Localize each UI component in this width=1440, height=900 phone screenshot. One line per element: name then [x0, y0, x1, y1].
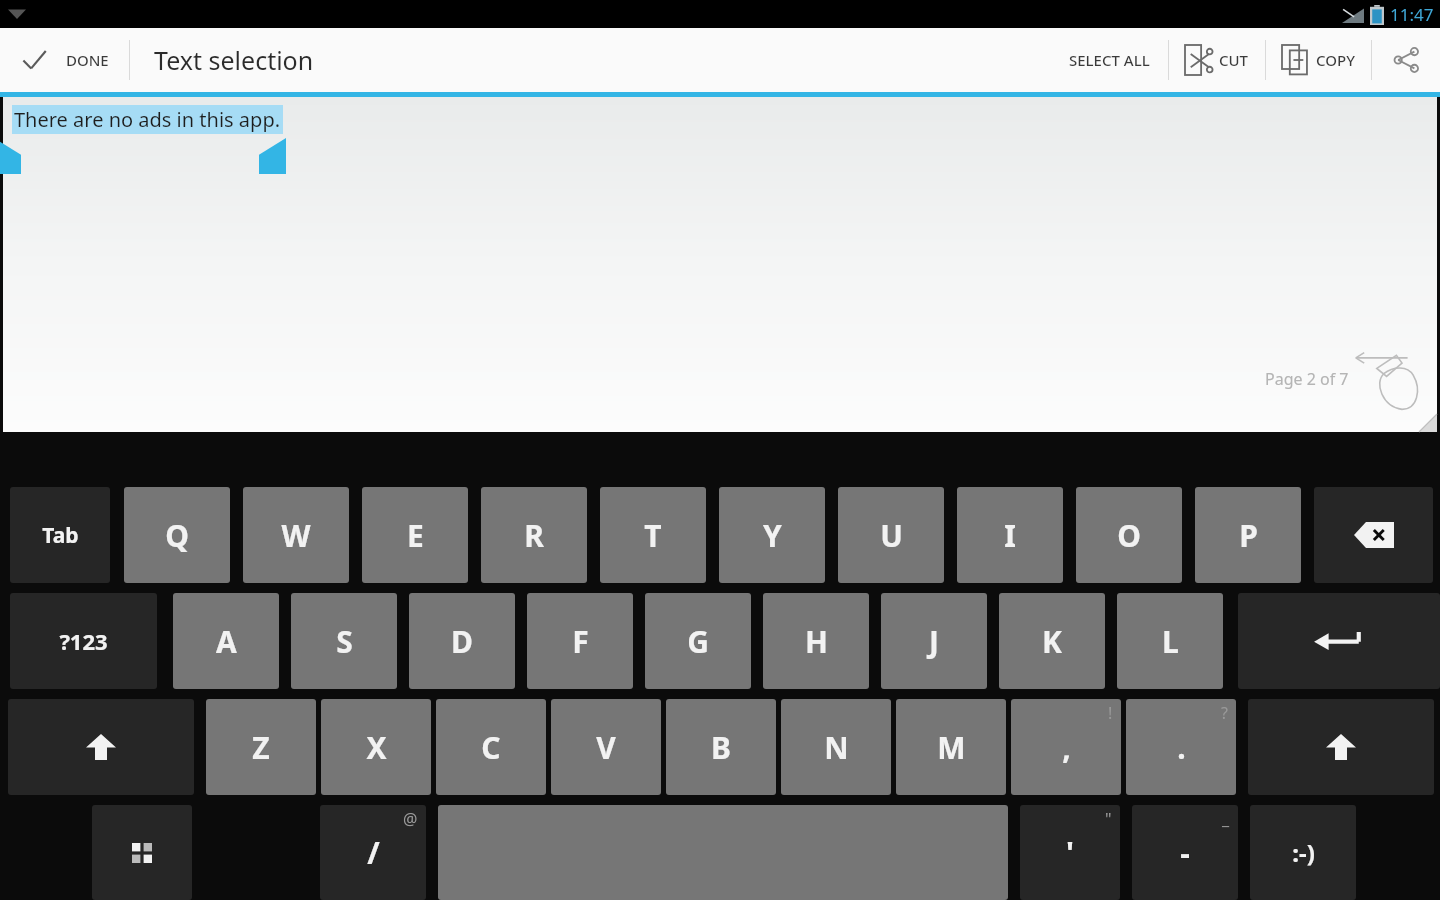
button[interactable]: X	[321, 699, 431, 795]
button[interactable]: O	[1076, 487, 1182, 583]
button[interactable]: Selection end handle	[259, 138, 286, 174]
staticText: N	[824, 727, 849, 768]
button[interactable]: H	[763, 593, 869, 689]
staticText: :-)	[1292, 836, 1315, 869]
button[interactable]: S	[291, 593, 397, 689]
staticText: COPY	[1316, 50, 1355, 70]
staticText: -	[1180, 832, 1190, 873]
staticText: Text selection	[154, 43, 314, 77]
button[interactable]: P	[1195, 487, 1301, 583]
button[interactable]: COPY	[1266, 31, 1371, 89]
button[interactable]: E	[362, 487, 468, 583]
staticText: Page 2 of 7	[1265, 368, 1349, 390]
button[interactable]: W	[243, 487, 349, 583]
staticText: V	[596, 727, 616, 768]
button[interactable]: F	[527, 593, 633, 689]
button[interactable]: J	[881, 593, 987, 689]
staticText: K	[1042, 621, 1062, 662]
button[interactable]: Y	[719, 487, 825, 583]
button[interactable]: Shift	[8, 699, 194, 795]
staticText: O	[1117, 515, 1141, 556]
staticText: F	[572, 621, 589, 662]
button[interactable]: /	[320, 805, 426, 900]
button[interactable]: T	[600, 487, 706, 583]
staticText: P	[1239, 515, 1258, 556]
button[interactable]: ,	[1011, 699, 1121, 795]
button[interactable]: I	[957, 487, 1063, 583]
staticText: /	[367, 832, 380, 873]
button[interactable]: U	[838, 487, 944, 583]
staticText: SELECT ALL	[1069, 50, 1150, 70]
staticText: H	[805, 621, 828, 662]
staticText: Tab	[42, 521, 79, 550]
staticText: CUT	[1219, 50, 1249, 70]
button[interactable]: Q	[124, 487, 230, 583]
button[interactable]: '	[1020, 805, 1120, 900]
staticText: .	[1177, 727, 1186, 768]
button[interactable]: L	[1117, 593, 1223, 689]
button[interactable]: :-)	[1250, 805, 1356, 900]
staticText: Z	[252, 727, 270, 768]
button[interactable]: Enter	[1238, 593, 1440, 689]
button[interactable]: Z	[206, 699, 316, 795]
staticText: '	[1066, 832, 1074, 873]
button[interactable]: .	[1126, 699, 1236, 795]
button[interactable]: DONE	[0, 32, 129, 88]
button[interactable]: Share	[1372, 28, 1440, 92]
button[interactable]: V	[551, 699, 661, 795]
staticText: S	[336, 621, 353, 662]
button[interactable]: B	[666, 699, 776, 795]
button[interactable]: Selection start handle	[0, 138, 21, 174]
staticText: U	[880, 515, 903, 556]
button[interactable]: D	[409, 593, 515, 689]
staticText: T	[644, 515, 662, 556]
staticText: D	[451, 621, 473, 662]
button[interactable]: C	[436, 699, 546, 795]
button[interactable]: Backspace	[1314, 487, 1433, 583]
staticText: !	[1108, 702, 1113, 724]
button[interactable]: K	[999, 593, 1105, 689]
staticText: M	[937, 727, 966, 768]
staticText: "	[1105, 808, 1112, 830]
staticText: I	[1004, 515, 1016, 556]
staticText: X	[366, 727, 387, 768]
button[interactable]: M	[896, 699, 1006, 795]
button[interactable]: Shift	[1248, 699, 1434, 795]
staticText: 11:47	[1390, 3, 1434, 26]
staticText: E	[407, 515, 424, 556]
staticText: Y	[763, 515, 782, 556]
staticText: ?	[1221, 702, 1228, 724]
staticText: R	[524, 515, 544, 556]
button[interactable]: Symbols	[10, 593, 157, 689]
staticText: J	[929, 621, 939, 662]
button[interactable]: CUT	[1169, 31, 1265, 89]
staticText: B	[711, 727, 731, 768]
staticText: G	[687, 621, 709, 662]
button[interactable]: N	[781, 699, 891, 795]
staticText: Q	[165, 515, 189, 556]
button[interactable]: SELECT ALL	[1051, 30, 1168, 90]
staticText: C	[481, 727, 501, 768]
staticText: A	[216, 621, 237, 662]
button[interactable]: There are no ads in this app.	[14, 106, 281, 133]
button[interactable]: R	[481, 487, 587, 583]
button[interactable]: Switch input method	[92, 805, 192, 900]
staticText: _	[1222, 808, 1230, 830]
button[interactable]: Tab	[10, 487, 110, 583]
staticText: ?123	[59, 626, 108, 656]
staticText: There are no ads in this app.	[14, 106, 281, 133]
button[interactable]: G	[645, 593, 751, 689]
button[interactable]: -	[1132, 805, 1238, 900]
staticText: L	[1162, 621, 1179, 662]
button[interactable]: A	[173, 593, 279, 689]
staticText: @	[403, 808, 418, 830]
staticText: W	[281, 515, 311, 556]
staticText: DONE	[66, 50, 109, 70]
staticText: ,	[1062, 727, 1071, 768]
